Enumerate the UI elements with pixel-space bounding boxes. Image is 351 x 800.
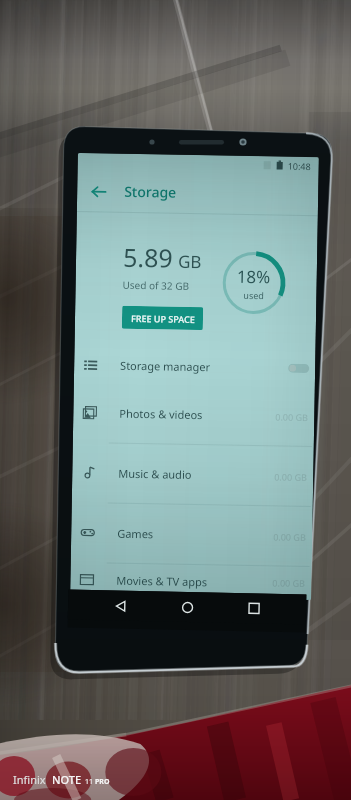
button[interactable]: Storage manager xyxy=(74,345,315,387)
staticText: 0.00 GB xyxy=(273,530,306,543)
staticText: PRO xyxy=(95,777,110,787)
button[interactable]: Recent apps xyxy=(239,593,269,624)
staticText: Games xyxy=(117,526,153,541)
button[interactable]: Back xyxy=(105,590,135,621)
button[interactable]: Music & audio xyxy=(72,443,314,506)
staticText: 10:48 xyxy=(288,160,312,172)
staticText: Storage xyxy=(124,182,176,202)
staticText: Movies & TV apps xyxy=(116,573,207,589)
button[interactable]: Movies & TV apps xyxy=(70,563,312,599)
staticText: Storage manager xyxy=(120,358,210,374)
button[interactable]: FREE UP SPACE xyxy=(122,306,203,330)
button[interactable]: Toggle storage manager xyxy=(288,364,309,373)
staticText: 0.00 GB xyxy=(275,410,308,423)
staticText: 0.00 GB xyxy=(274,470,307,483)
staticText: 18% xyxy=(237,265,271,288)
button[interactable]: Games xyxy=(71,503,313,566)
staticText: Infinix xyxy=(13,772,46,787)
staticText: GB xyxy=(178,250,202,273)
button[interactable]: Photos & videos xyxy=(73,383,315,446)
staticText: 0.00 GB xyxy=(272,576,305,589)
staticText: FREE UP SPACE xyxy=(131,312,195,325)
staticText: 11 xyxy=(85,777,94,787)
staticText: 5.89 xyxy=(123,240,173,275)
staticText: Music & audio xyxy=(118,466,192,482)
button[interactable]: Home xyxy=(172,592,202,622)
staticText: Used of 32 GB xyxy=(122,278,190,293)
staticText: NOTE xyxy=(52,772,82,787)
staticText: used xyxy=(243,289,264,301)
staticText: Photos & videos xyxy=(119,406,203,422)
button[interactable]: Back xyxy=(84,177,112,205)
